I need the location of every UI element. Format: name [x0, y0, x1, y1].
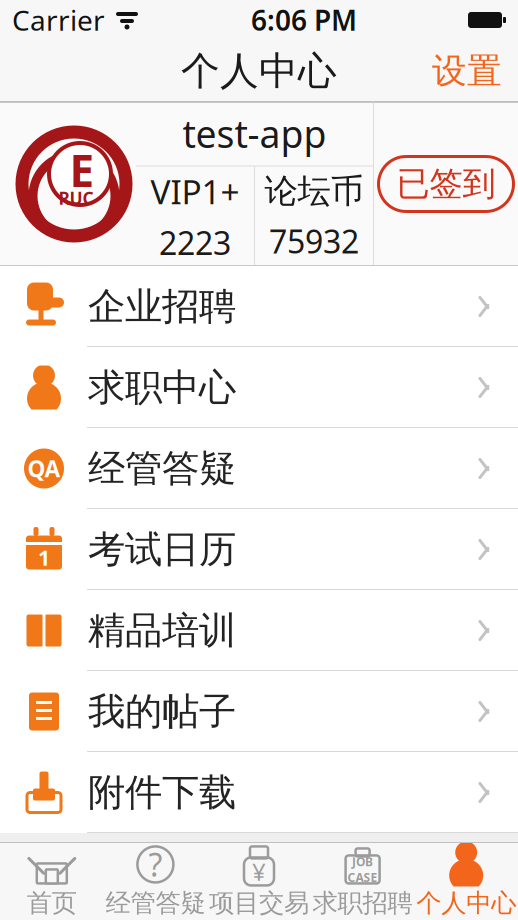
button[interactable]: 企业招聘 — [0, 266, 518, 347]
staticText: RUC — [58, 186, 93, 209]
staticText: 6:06 PM — [251, 1, 357, 39]
staticText: VIP1+ — [150, 169, 239, 213]
button[interactable]: 精品培训 — [0, 590, 518, 671]
button[interactable]: 已签到 — [378, 156, 513, 211]
staticText: 我的帖子 — [88, 689, 236, 734]
staticText: Carrier — [12, 1, 105, 39]
button[interactable]: 我的帖子 — [0, 671, 518, 752]
staticText: 附件下载 — [88, 770, 236, 815]
staticText: ¥ — [252, 855, 266, 887]
staticText: 求职招聘 — [313, 887, 413, 918]
button[interactable]: 首页 — [0, 837, 104, 920]
button[interactable]: 设置 — [418, 40, 518, 102]
staticText: JOB — [352, 853, 373, 869]
button[interactable]: 求职中心 — [0, 347, 518, 428]
staticText: 论坛币 — [264, 171, 363, 212]
button[interactable]: 个人中心 — [414, 837, 518, 920]
staticText: 1 — [38, 543, 50, 572]
staticText: 经管答疑 — [105, 887, 205, 918]
staticText: 项目交易 — [209, 887, 309, 918]
staticText: 已签到 — [396, 163, 495, 204]
staticText: QA — [27, 453, 60, 483]
staticText: test-app — [182, 109, 326, 158]
staticText: 求职中心 — [88, 365, 236, 410]
button[interactable]: QA — [0, 428, 518, 509]
staticText: CASE — [348, 869, 378, 885]
staticText: 设置 — [432, 50, 502, 92]
staticText: 75932 — [269, 220, 359, 262]
staticText: 考试日历 — [88, 527, 236, 572]
staticText: 精品培训 — [88, 608, 236, 653]
staticText: E — [69, 141, 94, 199]
staticText: 企业招聘 — [88, 284, 236, 329]
staticText: 个人中心 — [416, 887, 516, 918]
staticText: 2223 — [159, 221, 231, 264]
staticText: 个人中心 — [181, 47, 337, 95]
staticText: ? — [148, 843, 162, 886]
staticText: 首页 — [27, 887, 77, 918]
staticText: 经管答疑 — [88, 446, 236, 491]
button[interactable]: ? — [104, 837, 207, 920]
button[interactable]: 1 — [0, 509, 518, 590]
button[interactable]: ¥ — [207, 837, 311, 920]
button[interactable]: 附件下载 — [0, 752, 518, 833]
button[interactable]: JOB — [311, 837, 414, 920]
